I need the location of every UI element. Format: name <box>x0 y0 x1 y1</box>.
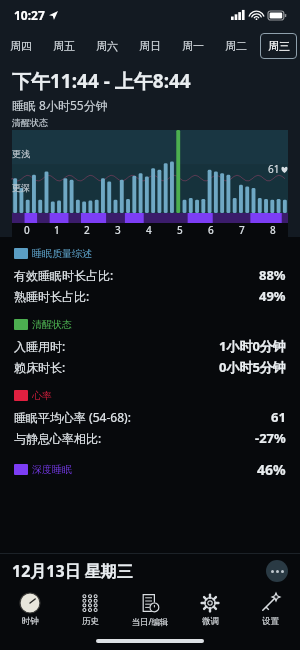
staticText: 睡眠质量综述 <box>32 247 92 260</box>
button[interactable]: 周二 <box>217 33 254 59</box>
button[interactable]: 赖床时长: <box>14 358 286 376</box>
staticText: 周六 <box>96 39 118 53</box>
staticText: 深度睡眠 <box>32 463 72 476</box>
staticText: 历史 <box>82 616 99 627</box>
staticText: 0 <box>24 223 30 237</box>
button[interactable]: 周日 <box>131 33 168 59</box>
staticText: 周四 <box>10 39 32 53</box>
staticText: 2 <box>84 223 90 237</box>
staticText: 88% <box>259 266 286 284</box>
staticText: 10:27 <box>14 7 45 23</box>
staticText: 清醒状态 <box>12 117 48 128</box>
button[interactable]: 历史 <box>60 588 120 632</box>
button[interactable]: 入睡用时: <box>14 337 286 355</box>
staticText: 46% <box>257 460 286 479</box>
button[interactable]: 时钟 <box>0 588 60 632</box>
staticText: 时钟 <box>22 616 39 627</box>
button[interactable]: 熟睡时长占比: <box>14 287 286 305</box>
staticText: 微调 <box>202 616 219 627</box>
staticText: 周五 <box>53 39 75 53</box>
staticText: 8 <box>270 223 276 237</box>
staticText: -27% <box>255 429 286 447</box>
button[interactable]: More options <box>266 560 288 582</box>
staticText: 下午11:44 - 上午8:44 <box>12 68 191 94</box>
staticText: 心率 <box>32 389 52 402</box>
button[interactable]: 与静息心率相比: <box>14 429 286 447</box>
staticText: 7 <box>239 223 245 237</box>
staticText: 4 <box>146 223 152 237</box>
button[interactable]: 周一 <box>174 33 211 59</box>
staticText: 61 <box>268 162 280 176</box>
button[interactable]: 深度睡眠 <box>14 460 286 479</box>
button[interactable]: 设置 <box>240 588 300 632</box>
staticText: 1 <box>54 223 60 237</box>
button[interactable]: 周四 <box>3 33 39 59</box>
staticText: 49% <box>259 287 286 305</box>
button[interactable]: 有效睡眠时长占比: <box>14 266 286 284</box>
staticText: 熟睡时长占比: <box>14 288 90 304</box>
staticText: 赖床时长: <box>14 359 66 375</box>
staticText: 有效睡眠时长占比: <box>14 267 114 283</box>
staticText: 睡眠 8小时55分钟 <box>12 97 108 113</box>
button[interactable]: 周五 <box>45 33 82 59</box>
staticText: 周日 <box>139 39 161 53</box>
staticText: 与静息心率相比: <box>14 430 102 446</box>
button[interactable]: 当日/编辑 <box>120 588 180 632</box>
staticText: 61 <box>271 408 286 426</box>
staticText: 3 <box>115 223 121 237</box>
button[interactable]: 周三 <box>260 33 297 59</box>
staticText: 清醒状态 <box>32 318 72 331</box>
staticText: 当日/编辑 <box>131 616 169 628</box>
staticText: 6 <box>208 223 214 237</box>
staticText: 5 <box>177 223 183 237</box>
button[interactable]: 睡眠平均心率 (54-68): <box>14 408 286 426</box>
staticText: 入睡用时: <box>14 338 66 354</box>
staticText: 周三 <box>268 39 290 53</box>
button[interactable]: 微调 <box>180 588 240 632</box>
staticText: 1小时0分钟 <box>219 337 286 355</box>
staticText: 12月13日 星期三 <box>12 560 133 582</box>
staticText: 更浅 <box>12 148 30 159</box>
button[interactable]: 清醒状态 <box>14 318 286 331</box>
button[interactable]: 心率 <box>14 389 286 402</box>
staticText: 周二 <box>225 39 247 53</box>
staticText: 更深 <box>12 182 30 193</box>
staticText: 周一 <box>182 39 204 53</box>
staticText: 睡眠平均心率 (54-68): <box>14 409 131 425</box>
button[interactable]: 睡眠质量综述 <box>14 247 286 260</box>
staticText: 0小时5分钟 <box>219 358 286 376</box>
staticText: 设置 <box>262 616 279 627</box>
button[interactable]: 周六 <box>88 33 125 59</box>
